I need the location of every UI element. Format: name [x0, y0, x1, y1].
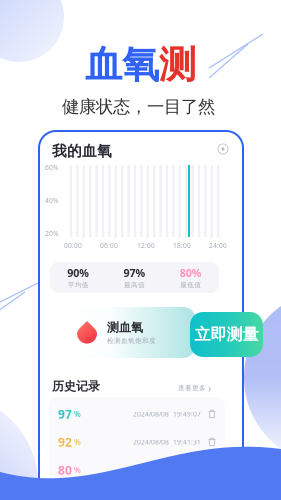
staticText: %	[72, 465, 81, 475]
staticText: 97%	[123, 266, 145, 280]
staticText: %	[72, 437, 81, 447]
staticText: 06:00	[100, 241, 118, 250]
staticText: %	[72, 409, 81, 419]
staticText: 20%	[45, 229, 59, 238]
staticText: 60%	[45, 163, 59, 172]
button[interactable]: 查看更多	[178, 381, 211, 395]
staticText: 90%	[67, 266, 89, 280]
staticText: 97	[58, 406, 72, 422]
staticText: 查看更多	[178, 384, 206, 392]
button[interactable]: 立即测量	[190, 312, 263, 357]
button[interactable]: 说明	[217, 143, 229, 155]
staticText: 2024/08/08 19:49:07	[133, 410, 201, 418]
staticText: ›	[208, 381, 211, 395]
staticText: 2024/08/08 19:41:31	[133, 438, 201, 446]
staticText: 最低值	[180, 281, 201, 289]
button[interactable]: 80	[49, 456, 225, 484]
button[interactable]: 97	[49, 400, 225, 428]
staticText: 00:00	[64, 241, 82, 250]
staticText: 80	[58, 462, 72, 478]
staticText: 12:00	[137, 241, 155, 250]
staticText: 血氧	[85, 42, 159, 88]
button[interactable]: 92	[49, 428, 225, 456]
staticText: 测	[159, 42, 196, 88]
staticText: 检测血氧饱和度	[107, 337, 156, 345]
staticText: 测血氧	[107, 320, 143, 335]
staticText: 历史记录	[52, 379, 100, 394]
staticText: 40%	[45, 196, 59, 205]
staticText: 立即测量	[194, 325, 258, 344]
staticText: 24:00	[209, 241, 227, 250]
staticText: 健康状态，一目了然	[62, 96, 215, 117]
staticText: 最高值	[124, 281, 145, 289]
staticText: 80%	[180, 266, 202, 280]
staticText: 平均值	[68, 281, 89, 289]
staticText: 18:00	[173, 241, 191, 250]
staticText: 我的血氧	[52, 142, 112, 160]
staticText: 92	[58, 434, 72, 450]
